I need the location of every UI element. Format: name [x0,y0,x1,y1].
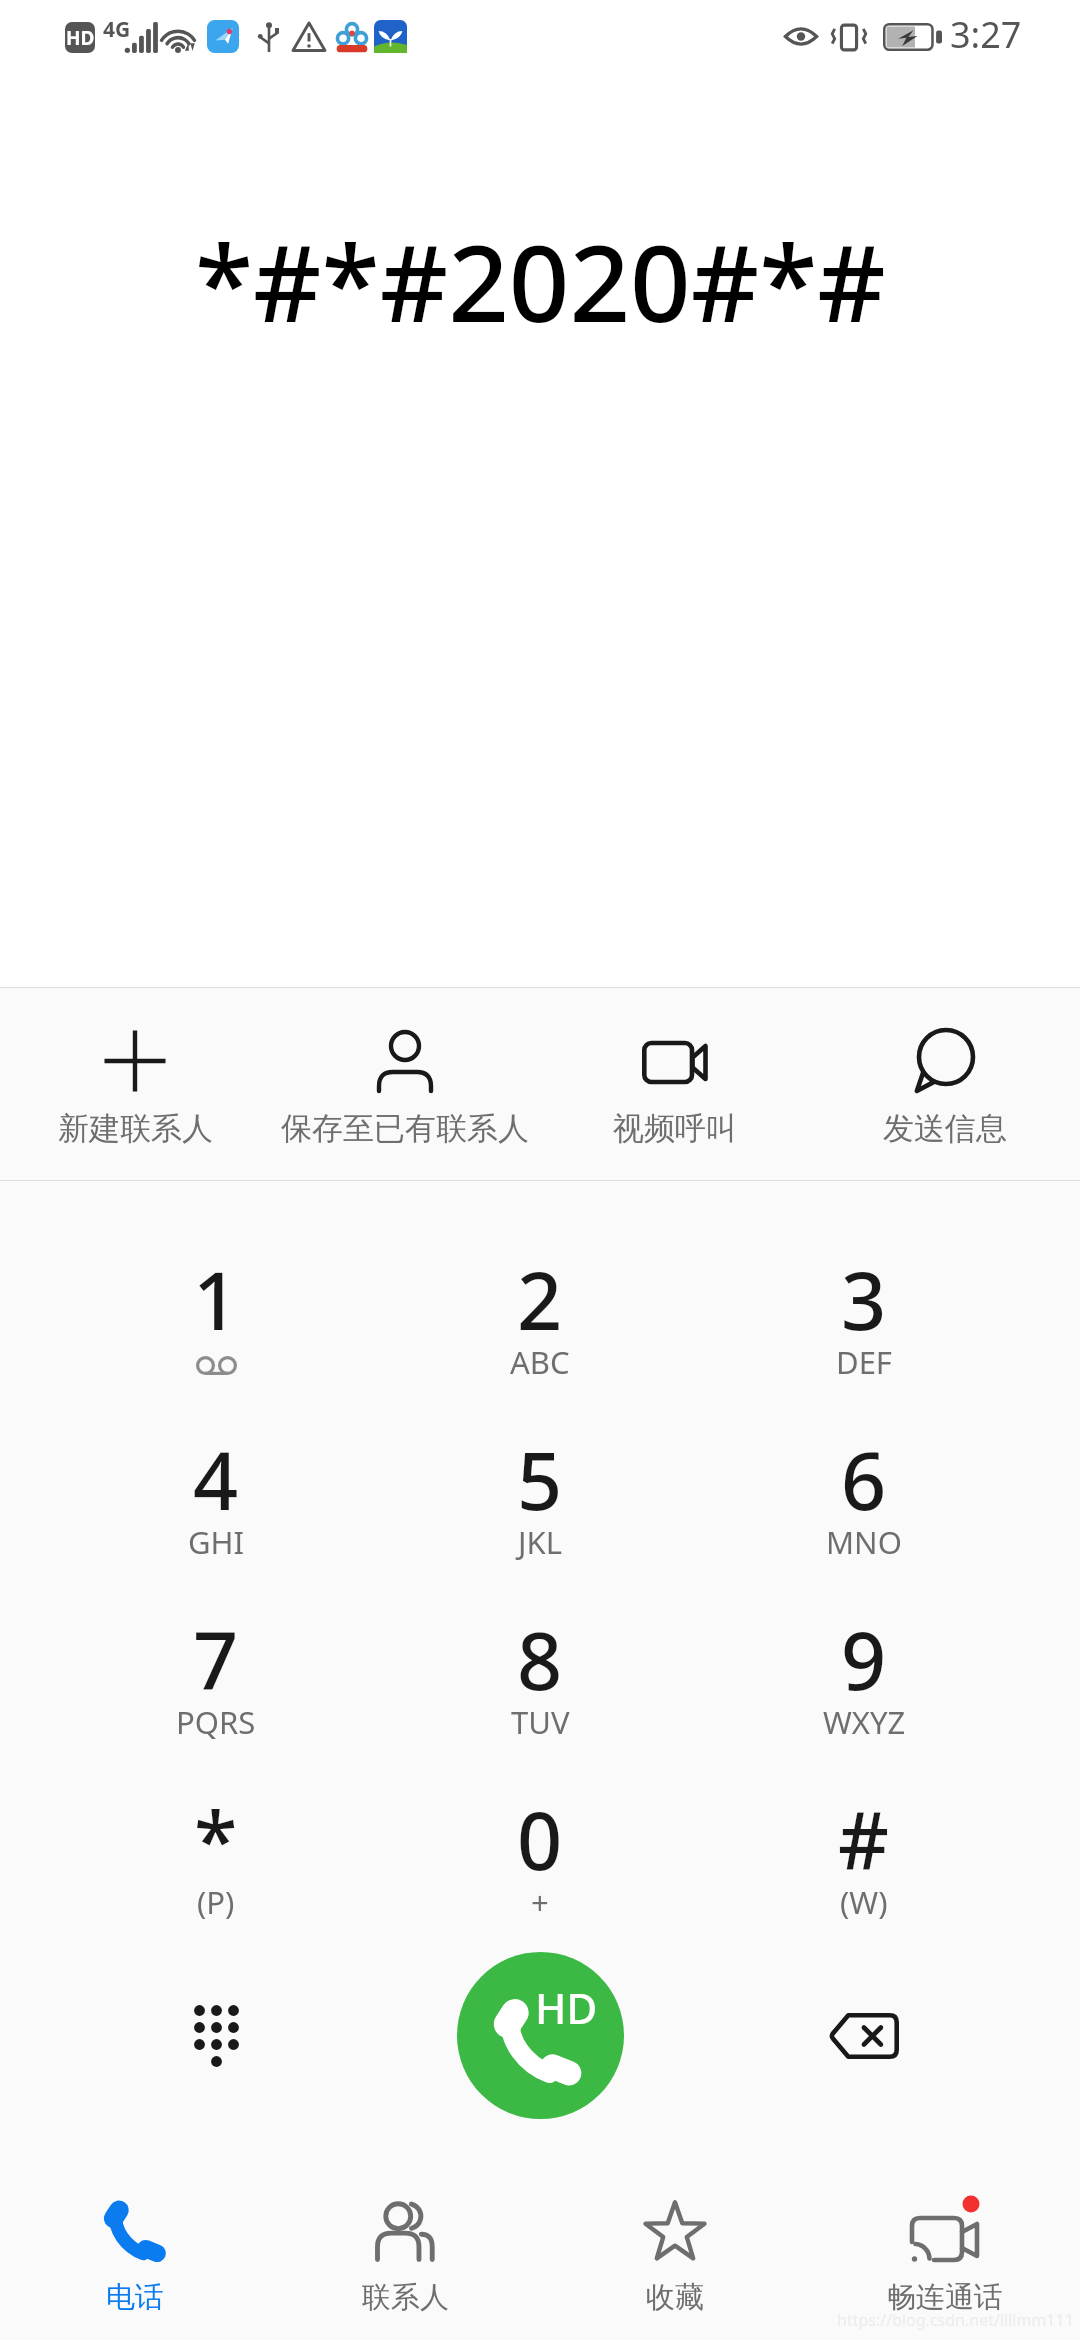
staticText: GHI [188,1521,245,1563]
staticText: 3:27 [950,10,1022,59]
staticText: DEF [836,1341,892,1383]
button[interactable]: Delete [720,1901,1080,2162]
button[interactable]: 9 [720,1541,1080,1721]
staticText: https://blog.csdn.net/lllimm111 [837,2309,1074,2331]
button[interactable]: 1 [0,1181,360,1361]
staticText: PQRS [176,1701,256,1743]
button[interactable]: 2 [360,1181,720,1361]
staticText: 0 [517,1786,563,1894]
button[interactable]: 联系人 [270,2162,540,2340]
staticText: HD [535,1979,598,2036]
button[interactable]: 6 [720,1361,1080,1541]
staticText: 4G [103,15,131,44]
button[interactable]: 电话 [0,2162,270,2340]
staticText: JKL [518,1521,562,1563]
staticText: 电话 [106,2279,164,2316]
staticText: 9 [841,1606,887,1714]
staticText: + [531,1881,549,1923]
staticText: 3 [841,1246,887,1354]
staticText: 畅连通话 [887,2279,1003,2316]
button[interactable]: * [0,1721,360,1901]
staticText: 联系人 [362,2279,449,2316]
button[interactable]: 保存至已有联系人 [270,988,540,1180]
button[interactable]: 视频呼叫 [540,988,810,1180]
staticText: 7 [193,1606,239,1714]
staticText: ABC [510,1341,570,1383]
staticText: 视频呼叫 [613,1109,737,1148]
staticText: 收藏 [646,2279,704,2316]
staticText: MNO [826,1521,902,1563]
button[interactable]: 新建联系人 [0,988,270,1180]
staticText: 2 [517,1246,563,1354]
staticText: HD [66,25,95,51]
staticText: TUV [511,1701,570,1743]
staticText: 新建联系人 [58,1109,213,1148]
staticText: 发送信息 [883,1109,1007,1148]
staticText: * [194,1786,238,1894]
button[interactable]: 5 [360,1361,720,1541]
button[interactable]: 3 [720,1181,1080,1361]
staticText: 5 [517,1426,563,1534]
staticText: 8 [517,1606,563,1714]
button[interactable]: 7 [0,1541,360,1721]
button[interactable]: 8 [360,1541,720,1721]
button[interactable]: 4 [0,1361,360,1541]
staticText: 6 [841,1426,887,1534]
button[interactable]: 0 [360,1721,720,1901]
staticText: # [838,1786,890,1894]
staticText: (P) [197,1881,235,1923]
staticText: 1 [193,1246,239,1354]
button[interactable]: 畅连通话 [810,2162,1080,2340]
button[interactable]: # [720,1721,1080,1901]
staticText: 4 [193,1426,239,1534]
button[interactable]: Call [457,1952,624,2119]
staticText: 保存至已有联系人 [281,1109,529,1148]
button[interactable]: 发送信息 [810,988,1080,1180]
staticText: WXYZ [823,1701,906,1743]
staticText: *#*#2020#*# [195,209,886,329]
staticText: (W) [840,1881,888,1923]
button[interactable]: 收藏 [540,2162,810,2340]
button[interactable]: Show dialpad [0,1901,360,2162]
